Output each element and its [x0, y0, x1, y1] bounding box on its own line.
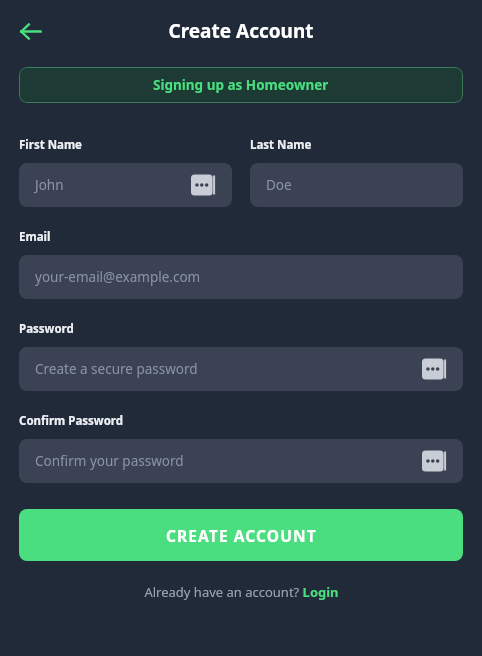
button[interactable]: Autofill: [422, 448, 452, 474]
button[interactable]: Doe: [250, 163, 463, 207]
button[interactable]: Autofill: [422, 356, 452, 382]
button[interactable]: Signing up as Homeowner: [19, 67, 463, 103]
button[interactable]: CREATE ACCOUNT: [19, 509, 463, 561]
staticText: Email: [19, 229, 51, 245]
button[interactable]: Autofill: [191, 172, 221, 198]
staticText: Password: [19, 321, 74, 337]
staticText: Confirm your password: [35, 452, 184, 470]
staticText: Doe: [266, 176, 292, 194]
button[interactable]: Back: [12, 13, 48, 49]
button[interactable]: Confirm your password: [19, 439, 463, 483]
staticText: Already have an account? Login: [144, 583, 339, 601]
button[interactable]: Create a secure password: [19, 347, 463, 391]
staticText: First Name: [19, 137, 82, 153]
staticText: John: [35, 176, 64, 194]
staticText: Create Account: [168, 18, 314, 44]
staticText: CREATE ACCOUNT: [166, 525, 317, 546]
staticText: Create a secure password: [35, 360, 198, 378]
staticText: Signing up as Homeowner: [153, 76, 329, 94]
button[interactable]: your-email@example.com: [19, 255, 463, 299]
staticText: Last Name: [250, 137, 312, 153]
staticText: your-email@example.com: [35, 268, 201, 286]
button[interactable]: John: [19, 163, 232, 207]
staticText: Confirm Password: [19, 413, 124, 429]
button[interactable]: Already have an account? Login: [19, 583, 463, 601]
